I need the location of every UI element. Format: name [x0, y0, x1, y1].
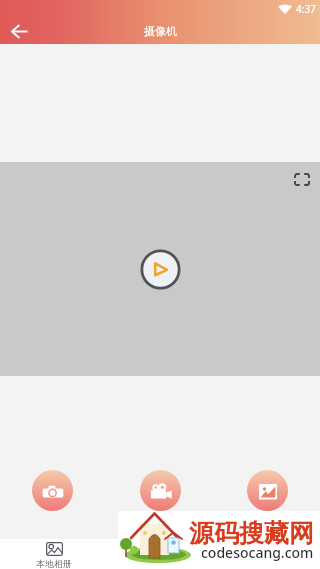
button[interactable]: Take photo	[32, 470, 73, 511]
staticText: 摄像机	[144, 24, 177, 38]
button[interactable]: Fullscreen	[294, 173, 310, 186]
button[interactable]: Play	[140, 249, 181, 290]
staticText: 本地相册	[36, 558, 72, 569]
button[interactable]: 本地相册	[26, 539, 82, 569]
staticText: codesocang.com	[201, 543, 314, 562]
button[interactable]: Gallery	[247, 470, 288, 511]
staticText: 源码搜藏网	[189, 518, 314, 549]
button[interactable]: Back	[0, 18, 38, 44]
button[interactable]: Record video	[140, 470, 181, 511]
staticText: 4:37	[296, 2, 316, 16]
